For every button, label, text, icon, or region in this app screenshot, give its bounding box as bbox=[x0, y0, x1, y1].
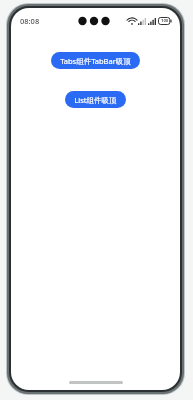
staticText: Tabs组件TabBar吸顶 bbox=[60, 56, 131, 66]
button[interactable]: List组件吸顶 bbox=[65, 91, 126, 108]
button[interactable]: Tabs组件TabBar吸顶 bbox=[51, 52, 140, 69]
staticText: 08:08 bbox=[20, 16, 40, 26]
staticText: List组件吸顶 bbox=[74, 95, 117, 105]
staticText: 100 bbox=[161, 18, 169, 24]
